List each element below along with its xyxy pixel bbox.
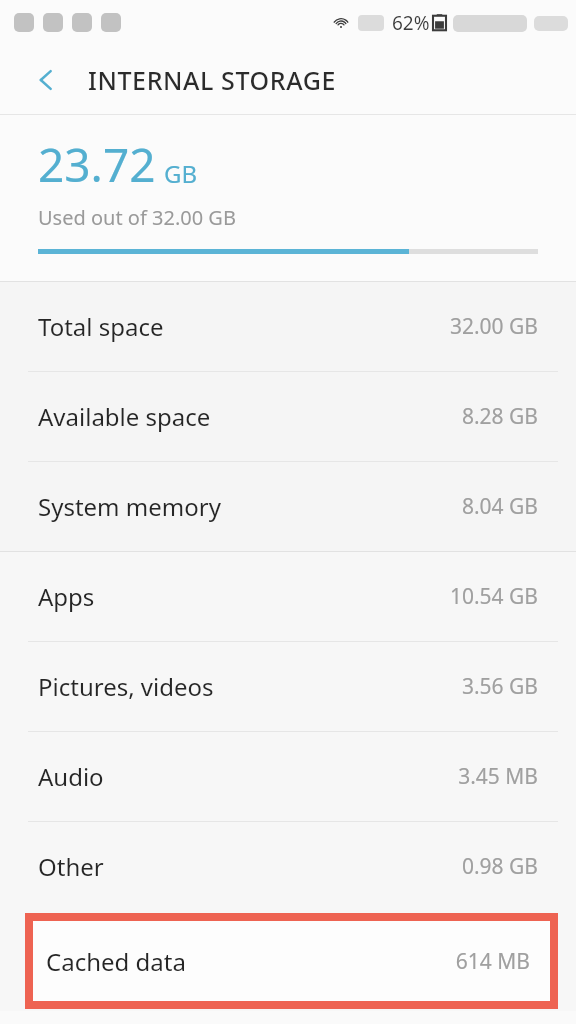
staticText: System memory (38, 490, 461, 523)
button[interactable]: Available space (0, 372, 576, 461)
staticText: INTERNAL STORAGE (88, 63, 336, 97)
button[interactable]: Back (18, 52, 74, 108)
staticText: 614 MB (455, 947, 530, 976)
button[interactable]: Audio (0, 732, 576, 821)
staticText: Pictures, videos (38, 670, 461, 703)
staticText: 0.98 GB (461, 852, 538, 881)
staticText: 8.04 GB (461, 492, 538, 521)
button[interactable]: Apps (0, 552, 576, 641)
staticText: Audio (38, 760, 458, 793)
button[interactable]: Pictures, videos (0, 642, 576, 731)
staticText: Available space (38, 400, 461, 433)
staticText: 3.56 GB (461, 672, 538, 701)
button[interactable]: Cached data (33, 921, 550, 1001)
staticText: Used out of 32.00 GB (38, 204, 236, 231)
staticText: Apps (38, 580, 449, 613)
staticText: Total space (38, 310, 449, 343)
staticText: Cached data (46, 945, 455, 978)
button[interactable]: System memory (0, 462, 576, 551)
staticText: 32.00 GB (449, 312, 538, 341)
staticText: 3.45 MB (458, 762, 538, 791)
button[interactable]: Other (0, 822, 576, 911)
staticText: 10.54 GB (449, 582, 538, 611)
button[interactable]: Total space (0, 282, 576, 371)
staticText: 23.72 (38, 133, 156, 196)
staticText: GB (164, 157, 198, 190)
staticText: Other (38, 850, 461, 883)
staticText: 62% (392, 10, 430, 36)
staticText: 8.28 GB (461, 402, 538, 431)
